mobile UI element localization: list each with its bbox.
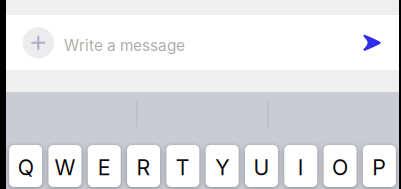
button[interactable]: U [245, 145, 278, 187]
staticText: O [332, 155, 348, 180]
button[interactable]: Add attachment [23, 27, 54, 58]
button[interactable]: O [324, 145, 357, 187]
staticText: Y [215, 155, 229, 180]
button[interactable]: I [284, 145, 317, 187]
button[interactable]: W [48, 145, 81, 187]
button[interactable]: Q [9, 145, 42, 187]
staticText: R [137, 155, 151, 180]
staticText: I [298, 155, 304, 180]
staticText: Q [18, 155, 34, 180]
button[interactable]: T [166, 145, 199, 187]
button[interactable]: P [363, 145, 396, 187]
button[interactable]: R [127, 145, 160, 187]
staticText: T [176, 155, 190, 180]
button[interactable]: Y [206, 145, 239, 187]
staticText: P [372, 155, 386, 180]
button[interactable]: Send [359, 30, 385, 56]
staticText: W [54, 155, 75, 180]
staticText: Write a message [64, 36, 185, 55]
staticText: E [98, 155, 111, 180]
button[interactable]: E [88, 145, 121, 187]
staticText: U [253, 155, 269, 180]
